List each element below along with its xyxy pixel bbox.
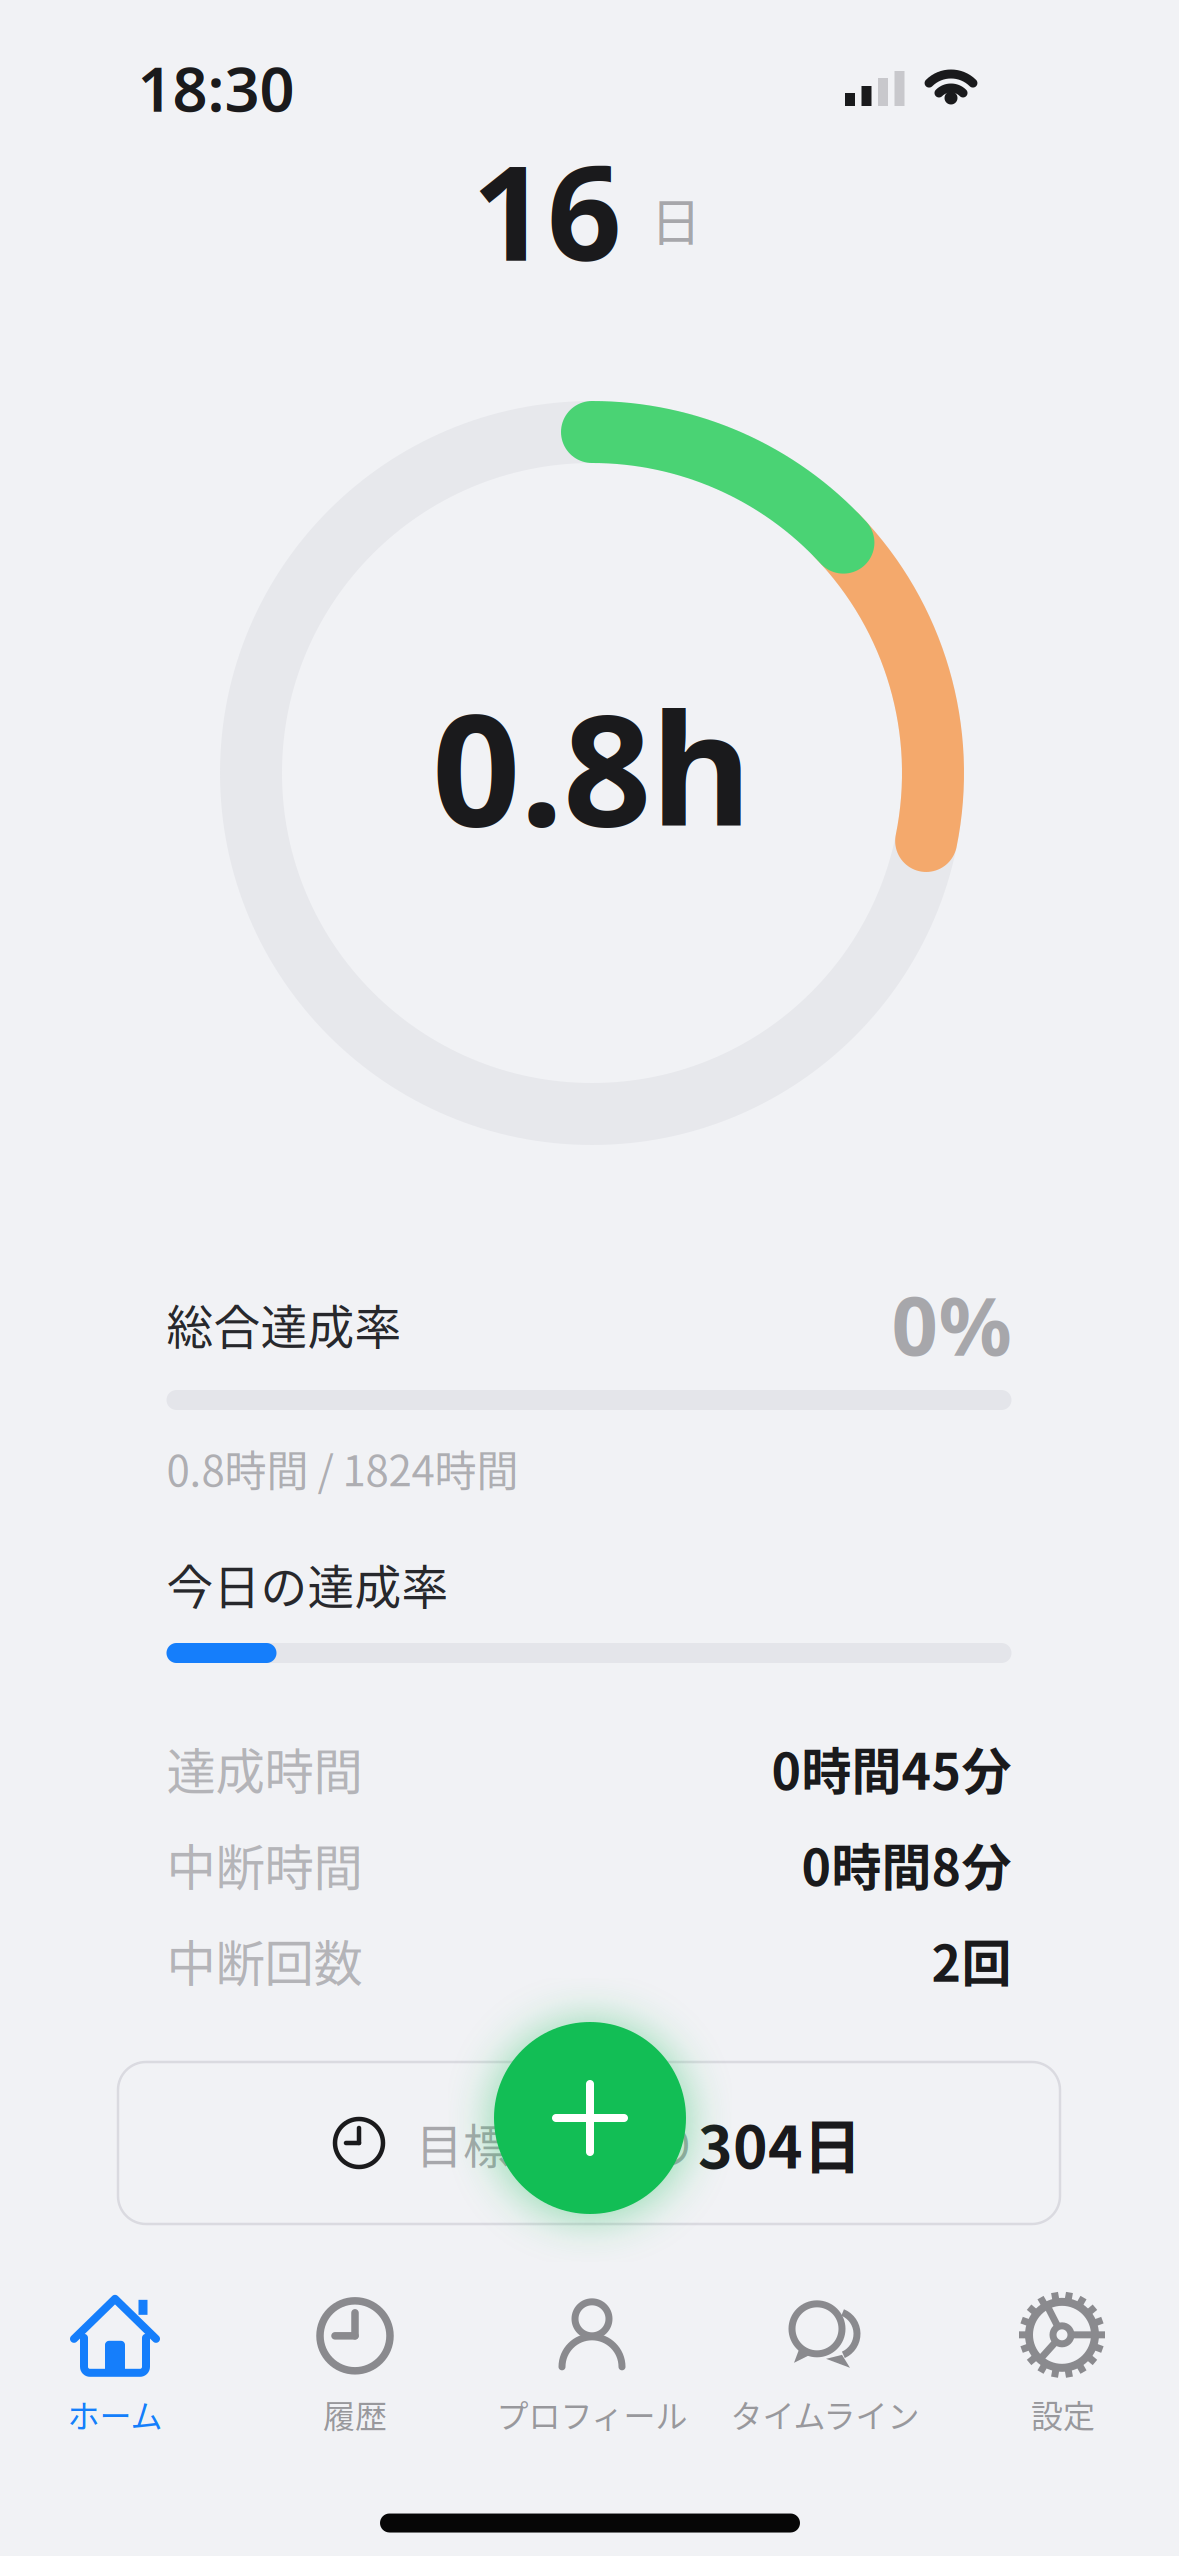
staticText: 304日 bbox=[698, 2100, 862, 2185]
staticText: 中断回数 bbox=[166, 1924, 362, 1996]
staticText: 今日の達成率 bbox=[166, 1550, 448, 1618]
staticText: タイムライン bbox=[730, 2391, 919, 2437]
button[interactable]: プロフィール bbox=[474, 2293, 709, 2437]
staticText: 0時間45分 bbox=[771, 1732, 1011, 1804]
staticText: プロフィール bbox=[496, 2391, 687, 2437]
staticText: 設定 bbox=[1031, 2391, 1095, 2437]
button[interactable]: 目標まで残り bbox=[118, 2062, 1060, 2224]
staticText: 中断時間 bbox=[166, 1828, 362, 1900]
staticText: ホーム bbox=[67, 2391, 162, 2437]
staticText: 目標まで残り bbox=[416, 2109, 698, 2177]
staticText: 16 bbox=[472, 123, 622, 297]
staticText: 2回 bbox=[931, 1924, 1011, 1996]
staticText: 履歴 bbox=[323, 2391, 387, 2437]
staticText: 0% bbox=[891, 1270, 1011, 1378]
button[interactable]: ホーム bbox=[0, 2293, 232, 2437]
button[interactable]: 履歴 bbox=[237, 2293, 472, 2437]
staticText: 総合達成率 bbox=[166, 1290, 401, 1358]
staticText: 0.8h bbox=[432, 663, 752, 869]
staticText: 達成時間 bbox=[166, 1732, 362, 1804]
staticText: 18:30 bbox=[137, 47, 294, 129]
button[interactable]: 追加 bbox=[492, 2020, 688, 2216]
staticText: 0時間8分 bbox=[801, 1828, 1011, 1900]
staticText: 日 bbox=[650, 182, 701, 256]
staticText: 0.8時間 / 1824時間 bbox=[166, 1438, 518, 1498]
button[interactable]: 設定 bbox=[945, 2293, 1179, 2437]
button[interactable]: タイムライン bbox=[707, 2293, 942, 2437]
